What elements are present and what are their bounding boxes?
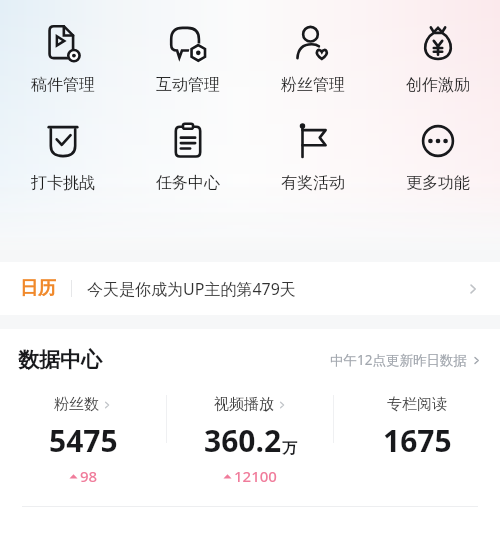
staticText: 360.2: [204, 420, 282, 461]
button[interactable]: 日历: [0, 262, 500, 315]
staticText: 视频播放: [214, 395, 274, 414]
staticText: 98: [80, 466, 98, 486]
staticText: 今天是你成为UP主的第479天: [87, 278, 296, 300]
staticText: 万: [282, 439, 297, 458]
button[interactable]: 粉丝管理: [263, 22, 363, 95]
staticText: 创作激励: [406, 75, 470, 95]
button[interactable]: 创作激励: [388, 22, 488, 95]
staticText: 1675: [383, 420, 452, 461]
staticText: 有奖活动: [281, 173, 345, 193]
button[interactable]: 打卡挑战: [13, 120, 113, 193]
staticText: 稿件管理: [31, 75, 95, 95]
button[interactable]: 稿件管理: [13, 22, 113, 95]
staticText: 粉丝数: [54, 395, 99, 414]
staticText: 数据中心: [18, 347, 102, 373]
staticText: 打卡挑战: [31, 173, 95, 193]
button[interactable]: 有奖活动: [263, 120, 363, 193]
staticText: 12100: [234, 466, 277, 486]
button[interactable]: 粉丝数: [0, 395, 166, 486]
button[interactable]: 视频播放: [167, 395, 333, 486]
button[interactable]: 互动管理: [138, 22, 238, 95]
staticText: 更多功能: [406, 173, 470, 193]
staticText: 粉丝管理: [281, 75, 345, 95]
staticText: 中午12点更新昨日数据: [330, 351, 467, 369]
staticText: 互动管理: [156, 75, 220, 95]
staticText: 任务中心: [156, 173, 220, 193]
button[interactable]: 更多功能: [388, 120, 488, 193]
staticText: 日历: [20, 277, 56, 300]
staticText: 5475: [49, 420, 118, 461]
button[interactable]: 任务中心: [138, 120, 238, 193]
button[interactable]: 中午12点更新昨日数据: [330, 351, 482, 369]
staticText: 专栏阅读: [387, 395, 447, 414]
button[interactable]: 专栏阅读: [334, 395, 500, 483]
